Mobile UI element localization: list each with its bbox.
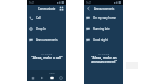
- button[interactable]: Contacts: [59, 6, 64, 11]
- staticText: Try saying: [98, 52, 110, 55]
- staticText: On my way home: [93, 16, 116, 20]
- staticText: Good night: [93, 38, 108, 42]
- button[interactable]: Announcements: [29, 34, 66, 45]
- staticText: Drop In: [36, 27, 46, 31]
- button[interactable]: Running late: [86, 23, 123, 34]
- staticText: Announcements: [94, 7, 115, 11]
- button[interactable]: Drop In: [29, 23, 66, 34]
- staticText: announcement”: [91, 60, 117, 64]
- button[interactable]: Call: [29, 12, 66, 23]
- staticText: 9:41: [86, 1, 92, 5]
- staticText: Communicate: [38, 7, 56, 11]
- button[interactable]: More: [56, 72, 65, 80]
- button[interactable]: Back: [86, 6, 91, 11]
- staticText: Try saying: [41, 52, 53, 55]
- staticText: Announcements: [36, 38, 58, 42]
- button[interactable]: Play: [37, 72, 46, 80]
- staticText: Call: [36, 16, 41, 20]
- staticText: Alexa: [49, 72, 55, 75]
- staticText: Running late: [93, 27, 110, 31]
- button[interactable]: On my way home: [86, 12, 123, 23]
- staticText: “Alexa, make a call”: [31, 56, 63, 60]
- staticText: “Alexa, make an: [91, 56, 117, 60]
- staticText: 9:41: [29, 1, 35, 5]
- button[interactable]: Good night: [86, 34, 123, 45]
- button[interactable]: Alexa: [47, 72, 56, 80]
- button[interactable]: Home: [28, 72, 37, 80]
